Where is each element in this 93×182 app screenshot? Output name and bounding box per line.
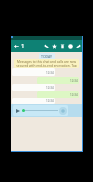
staticText: 12:34 <box>70 79 78 83</box>
button[interactable]: 12:34 <box>37 77 79 84</box>
button[interactable]: Delete <box>58 40 66 52</box>
staticText: Messages to this chat and calls are now … <box>16 60 77 67</box>
button[interactable] <box>13 105 68 116</box>
staticText: 12:34 <box>46 71 54 75</box>
staticText: 1 <box>21 42 25 50</box>
button[interactable]: Forward <box>74 40 82 52</box>
button[interactable]: Messages to this chat and calls are now … <box>14 59 79 68</box>
button[interactable]: 12:34 <box>37 91 79 98</box>
staticText: TODAY <box>41 54 53 59</box>
button[interactable]: Reply <box>42 40 50 52</box>
button[interactable]: 1 <box>20 40 26 52</box>
staticText: 12:34 <box>46 99 54 103</box>
button[interactable]: Star <box>50 40 58 52</box>
staticText: 12:34 <box>46 86 54 90</box>
button[interactable]: Back <box>12 40 20 52</box>
button[interactable]: 12:34 <box>12 98 55 104</box>
staticText: 12:34 <box>70 93 78 97</box>
button[interactable]: React <box>66 40 74 52</box>
button[interactable] <box>11 104 83 117</box>
button[interactable]: 12:34 <box>12 68 55 76</box>
button[interactable]: 12:34 <box>12 84 55 91</box>
button[interactable]: TODAY <box>39 53 55 60</box>
